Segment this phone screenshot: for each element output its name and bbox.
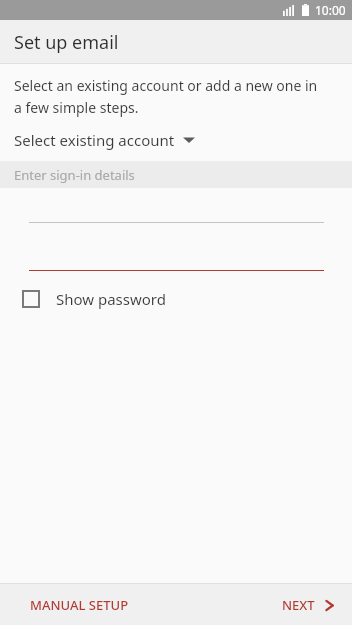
button[interactable]: Select existing account [14, 127, 195, 153]
button[interactable]: Show password [22, 285, 176, 313]
staticText: Select existing account [14, 130, 175, 150]
button[interactable]: NEXT [268, 588, 352, 622]
staticText: Enter sign-in details [14, 166, 135, 184]
button[interactable]: MANUAL SETUP [0, 588, 143, 622]
staticText: MANUAL SETUP [30, 596, 129, 614]
staticText: Select an existing account or add a new … [14, 76, 328, 117]
staticText: 10:00 [315, 2, 346, 18]
staticText: NEXT [282, 596, 315, 614]
staticText: Set up email [14, 30, 119, 55]
staticText: Show password [56, 289, 166, 309]
